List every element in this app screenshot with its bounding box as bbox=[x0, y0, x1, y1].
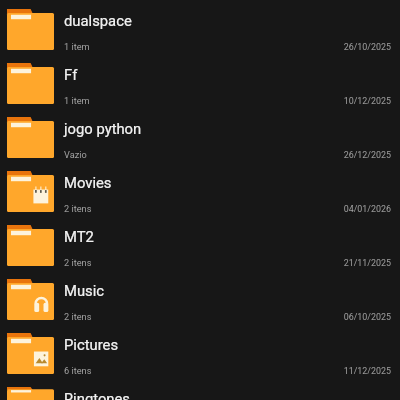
staticText: Vazio bbox=[64, 149, 87, 160]
staticText: jogo python bbox=[64, 120, 142, 137]
button[interactable]: MT2 bbox=[0, 216, 400, 270]
staticText: 11/12/2025 bbox=[0, 366, 391, 376]
staticText: 1 item bbox=[64, 95, 90, 106]
staticText: 10/12/2025 bbox=[0, 96, 391, 106]
button[interactable]: dualspace bbox=[0, 0, 400, 54]
staticText: 21/11/2025 bbox=[0, 258, 391, 268]
staticText: Music bbox=[64, 282, 105, 299]
staticText: dualspace bbox=[64, 12, 132, 29]
staticText: 6 itens bbox=[64, 365, 92, 376]
staticText: 26/10/2025 bbox=[0, 42, 391, 52]
button[interactable]: jogo python bbox=[0, 108, 400, 162]
staticText: 2 itens bbox=[64, 311, 92, 322]
staticText: Ff bbox=[64, 66, 78, 83]
button[interactable]: Movies bbox=[0, 162, 400, 216]
staticText: 06/10/2025 bbox=[0, 312, 391, 322]
button[interactable]: Ringtones bbox=[0, 378, 400, 400]
staticText: 1 item bbox=[64, 41, 90, 52]
staticText: 04/01/2026 bbox=[0, 204, 391, 214]
button[interactable]: Pictures bbox=[0, 324, 400, 378]
staticText: 2 itens bbox=[64, 257, 92, 268]
button[interactable]: Ff bbox=[0, 54, 400, 108]
staticText: 2 itens bbox=[64, 203, 92, 214]
staticText: Pictures bbox=[64, 336, 119, 353]
staticText: MT2 bbox=[64, 228, 94, 245]
staticText: Movies bbox=[64, 174, 112, 191]
staticText: 26/12/2025 bbox=[0, 150, 391, 160]
staticText: Ringtones bbox=[64, 390, 130, 400]
button[interactable]: Music bbox=[0, 270, 400, 324]
